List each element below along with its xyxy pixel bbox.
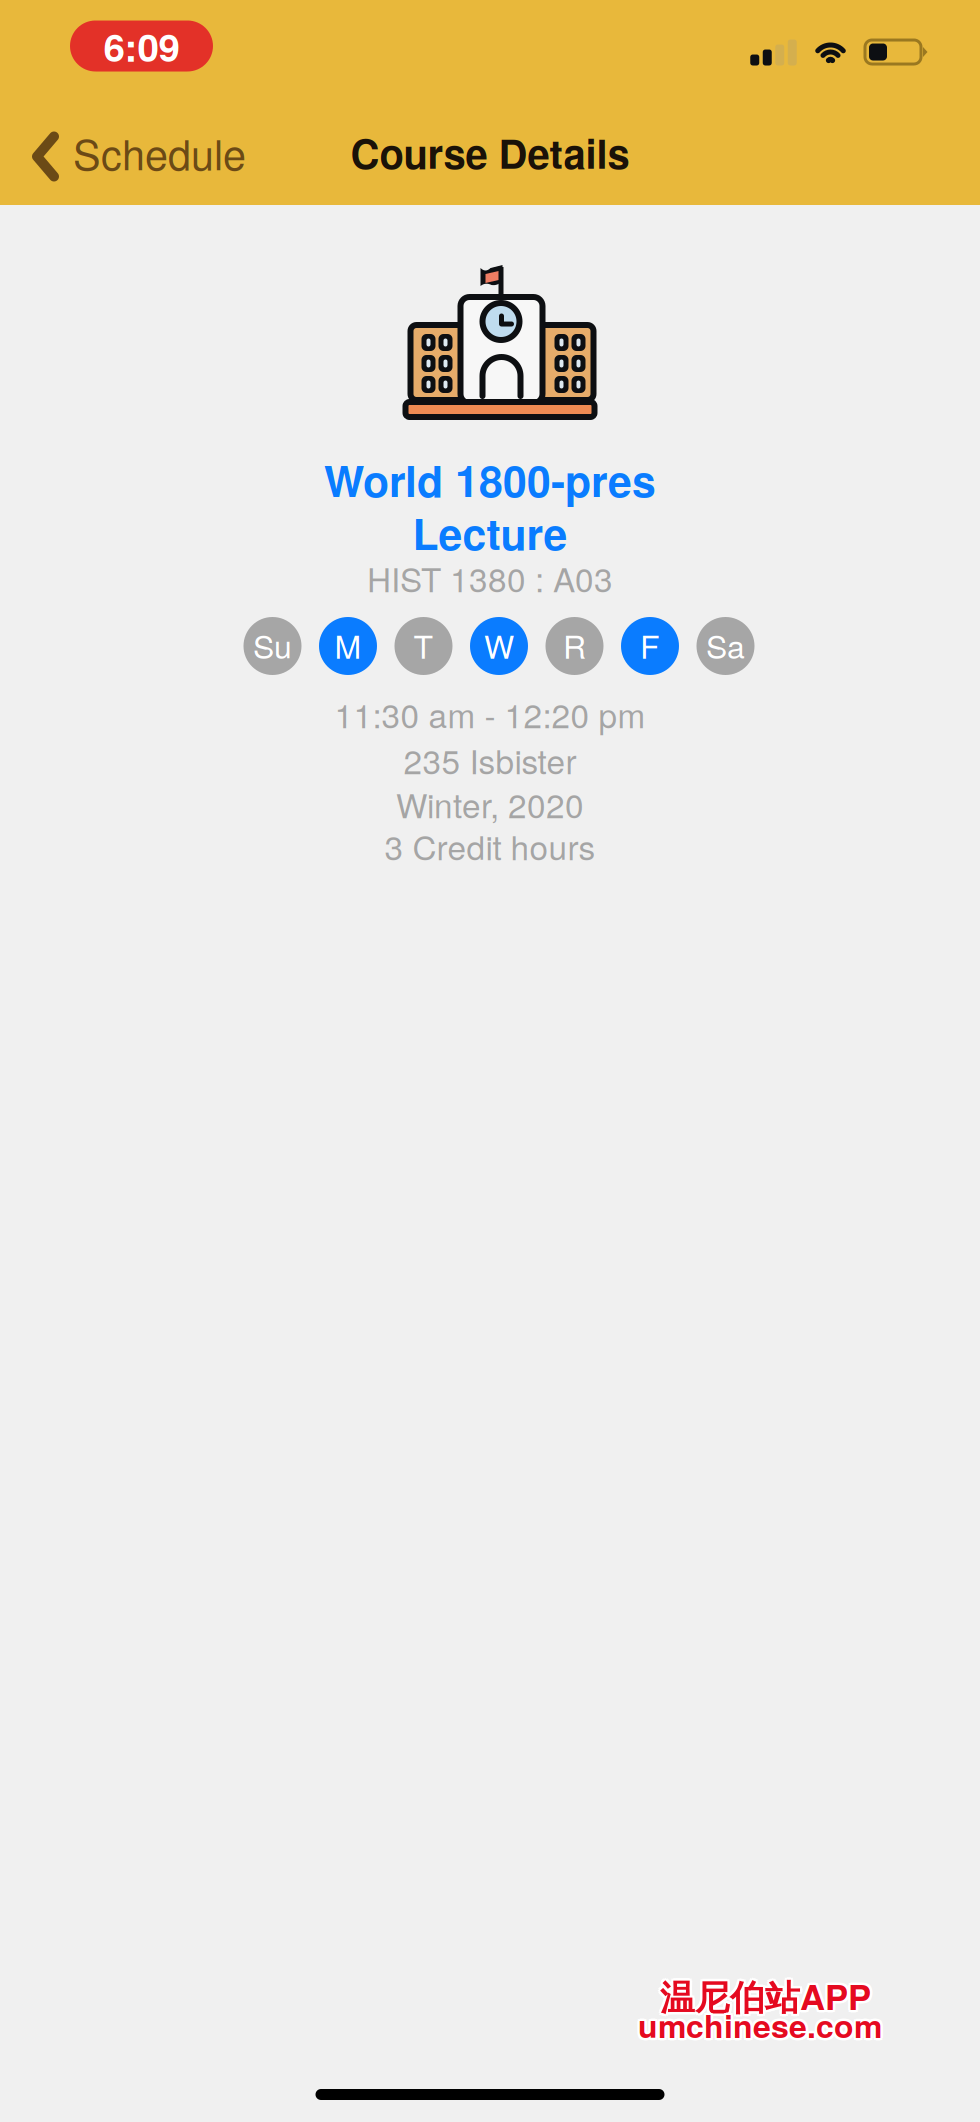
staticText: 温尼伯站APP — [663, 1971, 874, 2021]
button[interactable]: F — [621, 617, 679, 675]
button[interactable]: Schedule — [0, 105, 246, 192]
staticText: Sa — [706, 622, 745, 668]
staticText: 温尼伯站APP — [662, 1969, 873, 2019]
staticText: 6:09 — [103, 18, 179, 74]
staticText: umchinese.com — [638, 1999, 882, 2045]
staticText: 235 Isbister — [403, 736, 576, 784]
staticText: R — [563, 622, 586, 668]
staticText: 温尼伯站APP — [660, 1968, 871, 2018]
staticText: World 1800-pres — [324, 449, 656, 510]
staticText: T — [413, 622, 433, 668]
staticText: HIST 1380 : A03 — [367, 554, 613, 602]
staticText: 温尼伯站APP — [660, 1974, 871, 2023]
staticText: Lecture — [412, 502, 567, 563]
button[interactable]: Sa — [696, 617, 754, 675]
button[interactable]: W — [470, 617, 528, 675]
staticText: 温尼伯站APP — [658, 1973, 869, 2022]
staticText: Winter, 2020 — [396, 780, 584, 828]
staticText: Schedule — [73, 123, 246, 182]
staticText: F — [640, 622, 660, 668]
staticText: Su — [253, 622, 292, 668]
staticText: 温尼伯站APP — [657, 1971, 868, 2021]
button[interactable]: M — [319, 617, 377, 675]
staticText: 温尼伯站APP — [662, 1973, 873, 2022]
staticText: W — [484, 622, 514, 668]
staticText: 温尼伯站APP — [658, 1969, 869, 2019]
staticText: umchinese.com — [638, 2005, 882, 2050]
button[interactable]: Su — [243, 617, 301, 675]
staticText: umchinese.com — [636, 2004, 880, 2050]
staticText: umchinese.com — [636, 2000, 880, 2046]
button[interactable]: R — [545, 617, 603, 675]
staticText: umchinese.com — [635, 2002, 879, 2048]
staticText: umchinese.com — [638, 2002, 882, 2048]
button[interactable]: T — [394, 617, 452, 675]
staticText: 3 Credit hours — [384, 822, 595, 870]
staticText: umchinese.com — [641, 2002, 885, 2048]
staticText: umchinese.com — [640, 2004, 884, 2050]
staticText: 11:30 am - 12:20 pm — [334, 690, 645, 738]
staticText: Course Details — [350, 124, 629, 181]
staticText: M — [334, 622, 361, 668]
staticText: umchinese.com — [640, 2000, 884, 2046]
staticText: 温尼伯站APP — [660, 1971, 871, 2021]
